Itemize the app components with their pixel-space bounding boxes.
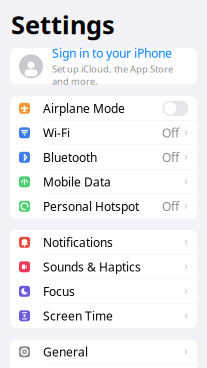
staticText: Settings (11, 8, 115, 41)
staticText: Screen Time (43, 308, 113, 324)
button[interactable]: Screen Time (10, 304, 197, 328)
staticText: Sounds & Haptics (43, 259, 141, 275)
button[interactable]: Mobile Data (10, 170, 197, 194)
button[interactable]: Personal Hotspot (10, 194, 197, 218)
button[interactable]: Focus (10, 279, 197, 303)
staticText: Bluetooth (43, 149, 97, 165)
button[interactable]: Notifications (10, 230, 197, 254)
staticText: Focus (43, 283, 75, 299)
staticText: Mobile Data (43, 174, 111, 190)
button[interactable]: Sounds & Haptics (10, 255, 197, 279)
staticText: Sign in to your iPhone (52, 45, 172, 61)
staticText: Set up iCloud, the App Store and more. (52, 63, 173, 87)
button[interactable]: Sign in to your iPhone (0, 48, 207, 84)
staticText: Notifications (43, 234, 113, 250)
staticText: Off (162, 149, 179, 165)
staticText: General (43, 344, 88, 360)
button[interactable]: Bluetooth (10, 145, 197, 169)
button[interactable]: Airplane Mode (10, 96, 197, 120)
button[interactable]: Wi-Fi (10, 121, 197, 145)
staticText: Off (162, 125, 179, 141)
staticText: Personal Hotspot (43, 198, 139, 214)
button[interactable]: General (10, 340, 197, 364)
staticText: Off (162, 198, 179, 214)
staticText: Airplane Mode (43, 100, 125, 116)
staticText: Wi-Fi (43, 125, 70, 141)
